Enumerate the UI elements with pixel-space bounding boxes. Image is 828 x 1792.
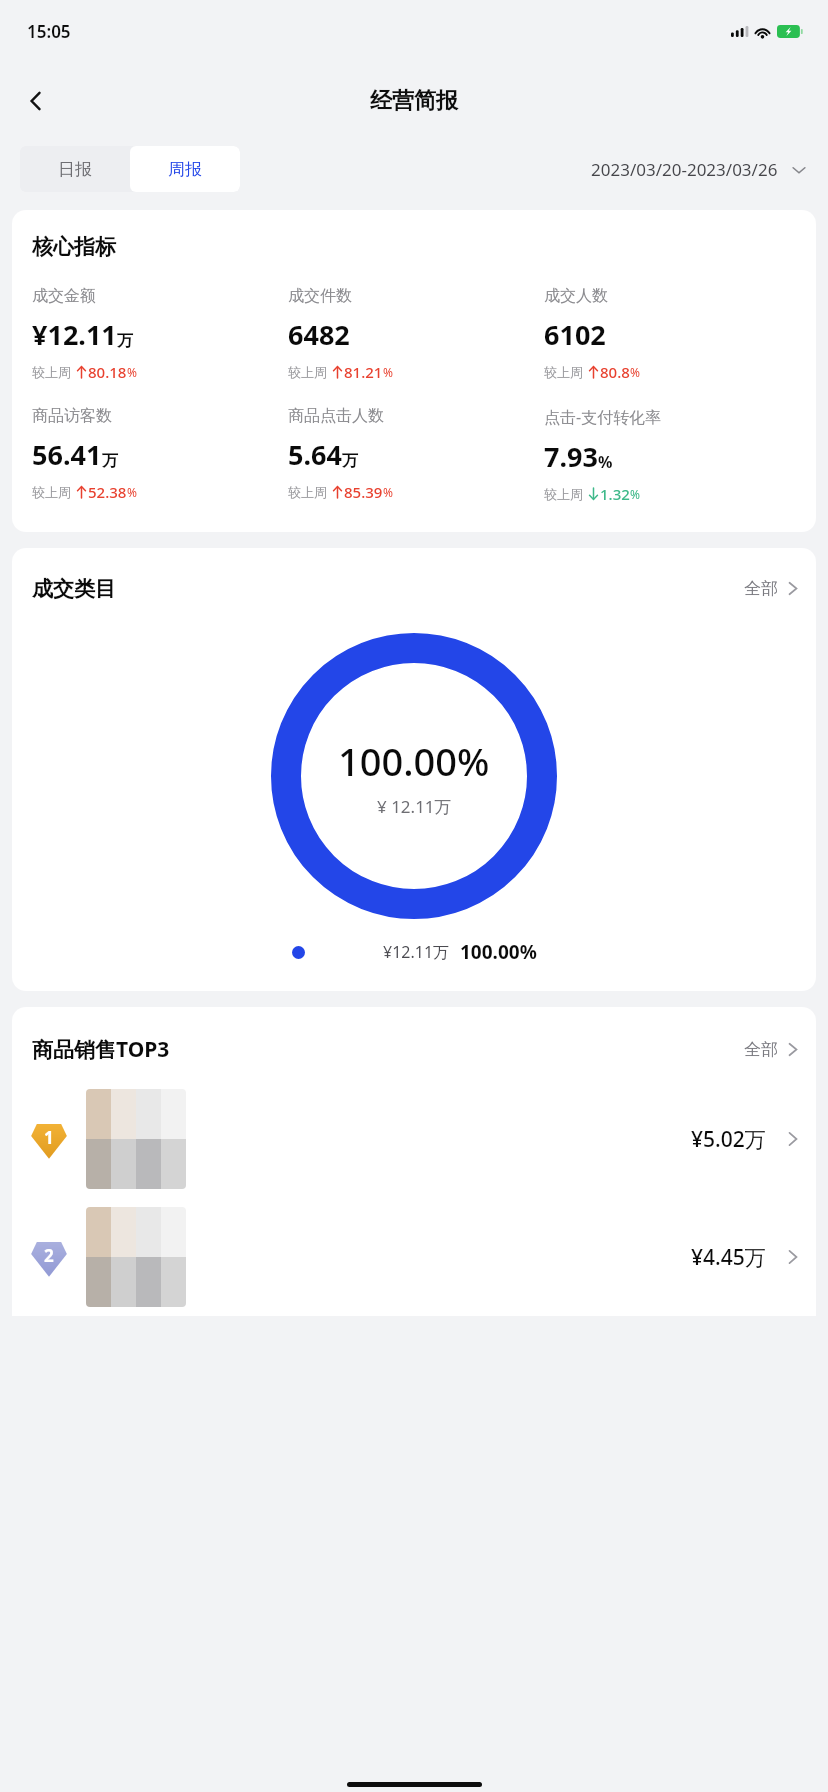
- staticText: ¥12.11: [32, 316, 117, 353]
- staticText: %: [127, 364, 137, 380]
- staticText: 较上周: [32, 364, 71, 380]
- staticText: 81.21: [344, 362, 383, 382]
- staticText: 2: [44, 1244, 54, 1267]
- staticText: 万: [342, 451, 358, 471]
- staticText: 核心指标: [32, 234, 116, 260]
- staticText: 7.93: [544, 438, 598, 475]
- staticText: 5.64: [288, 436, 342, 473]
- staticText: %: [383, 484, 393, 500]
- staticText: 2023/03/20-2023/03/26: [591, 158, 778, 181]
- staticText: 6102: [544, 316, 606, 353]
- staticText: %: [383, 364, 393, 380]
- staticText: 56.41: [32, 436, 102, 473]
- staticText: 80.8: [600, 362, 630, 382]
- staticText: 成交人数: [544, 286, 608, 306]
- staticText: 较上周: [32, 484, 71, 500]
- button[interactable]: 全部: [744, 572, 798, 605]
- staticText: %: [630, 486, 640, 502]
- staticText: 商品点击人数: [288, 406, 384, 426]
- button[interactable]: 日报: [20, 146, 130, 192]
- staticText: 万: [117, 331, 133, 351]
- button[interactable]: 周报: [130, 146, 240, 192]
- staticText: 较上周: [288, 484, 327, 500]
- staticText: 全部: [744, 1039, 778, 1060]
- staticText: 商品访客数: [32, 406, 112, 426]
- staticText: 100.00%: [460, 939, 537, 965]
- staticText: 1.32: [600, 484, 630, 504]
- staticText: 成交金额: [32, 286, 96, 306]
- staticText: ¥4.45万: [691, 1243, 766, 1272]
- staticText: 15:05: [27, 20, 71, 43]
- staticText: ¥12.11万: [383, 941, 450, 963]
- staticText: 全部: [744, 578, 778, 599]
- staticText: %: [630, 364, 640, 380]
- staticText: 成交类目: [32, 576, 116, 602]
- staticText: ¥5.02万: [691, 1125, 766, 1154]
- staticText: 1: [44, 1126, 54, 1149]
- staticText: 较上周: [544, 486, 583, 502]
- staticText: 周报: [168, 159, 202, 180]
- staticText: 经营简报: [370, 87, 458, 115]
- staticText: 成交件数: [288, 286, 352, 306]
- staticText: %: [598, 451, 613, 473]
- button[interactable]: 2023/03/20-2023/03/26: [591, 158, 806, 181]
- button[interactable]: 2: [12, 1198, 816, 1316]
- staticText: ¥ 12.11万: [377, 795, 452, 818]
- staticText: 较上周: [544, 364, 583, 380]
- staticText: 较上周: [288, 364, 327, 380]
- staticText: 80.18: [88, 362, 127, 382]
- staticText: 85.39: [344, 482, 383, 502]
- button[interactable]: 1: [12, 1080, 816, 1198]
- button[interactable]: Back: [8, 73, 64, 129]
- staticText: 万: [102, 451, 118, 471]
- staticText: 52.38: [88, 482, 127, 502]
- staticText: 点击-支付转化率: [544, 406, 662, 428]
- staticText: 日报: [58, 159, 92, 180]
- button[interactable]: 全部: [744, 1033, 798, 1066]
- staticText: %: [127, 484, 137, 500]
- staticText: 6482: [288, 316, 350, 353]
- staticText: 商品销售TOP3: [32, 1035, 170, 1064]
- staticText: 100.00%: [338, 735, 490, 787]
